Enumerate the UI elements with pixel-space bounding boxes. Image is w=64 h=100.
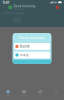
staticText: Jane Appleseed [13, 8, 24, 10]
button[interactable]: Cards [16, 88, 32, 100]
staticText: 9:41 [2, 0, 9, 5]
button[interactable]: 日本語 [14, 52, 50, 58]
button[interactable]: Continue [12, 59, 51, 64]
staticText: Good morning [13, 4, 35, 8]
staticText: More [54, 94, 58, 96]
button[interactable]: More [48, 88, 64, 100]
staticText: Home [6, 94, 10, 96]
button[interactable]: Home [0, 88, 16, 100]
staticText: Recent activity [4, 11, 23, 15]
button[interactable]: English [14, 43, 50, 50]
staticText: English [20, 45, 30, 48]
staticText: 日本語 [20, 53, 29, 57]
button[interactable]: Profile [8, 5, 12, 9]
staticText: Stats [38, 94, 41, 96]
button[interactable]: Stats [32, 88, 48, 100]
staticText: Choose language [18, 36, 45, 40]
button[interactable]: Notifications [56, 5, 59, 9]
